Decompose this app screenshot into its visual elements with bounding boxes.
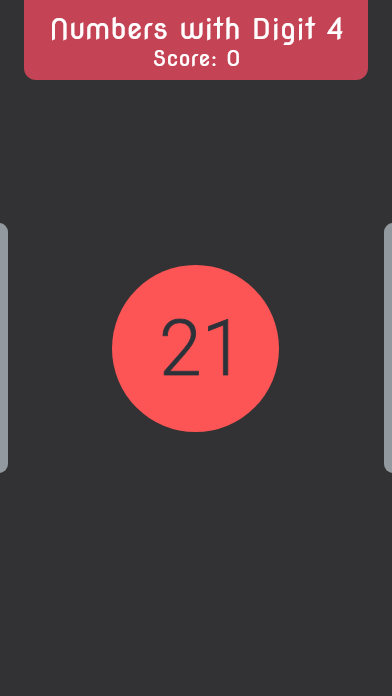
staticText: Numbers with Digit 4: [49, 11, 344, 46]
button[interactable]: Numbers with Digit 4: [24, 0, 368, 80]
button[interactable]: Number 21: [112, 265, 279, 432]
button[interactable]: Right paddle: [384, 223, 392, 473]
staticText: 21: [159, 304, 245, 394]
button[interactable]: Left paddle: [0, 223, 8, 473]
staticText: Score: 0: [152, 45, 241, 72]
staticText: 21: [159, 304, 245, 394]
